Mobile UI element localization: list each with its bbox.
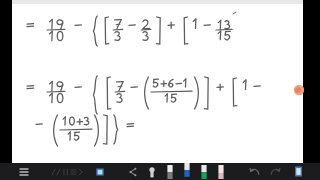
button[interactable]: Pages — [92, 164, 108, 180]
button[interactable]: Menu — [16, 164, 32, 180]
button[interactable]: Page view — [291, 164, 306, 179]
button[interactable]: Redo — [268, 164, 283, 179]
button[interactable]: Green highlighter — [197, 165, 211, 179]
button[interactable]: Blue pen — [180, 165, 194, 179]
button[interactable]: Eraser — [214, 165, 228, 179]
button[interactable]: Pencil — [163, 165, 177, 179]
button[interactable]: Select — [145, 165, 159, 179]
button[interactable]: Share — [126, 165, 140, 179]
button[interactable]: Formatting tools — [44, 164, 88, 180]
button[interactable]: Undo — [247, 164, 262, 179]
